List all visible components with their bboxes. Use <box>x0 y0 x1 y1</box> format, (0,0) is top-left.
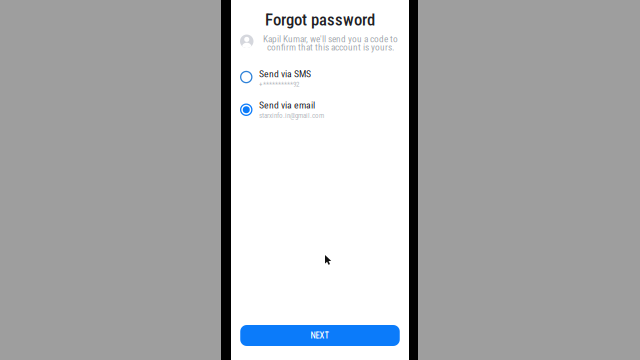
staticText: +**********92 <box>259 80 299 88</box>
button[interactable]: Send via SMS <box>231 68 409 88</box>
staticText: confirm that this account is yours. <box>267 42 394 53</box>
staticText: Kapil Kumar, we'll send you a code to <box>263 33 398 44</box>
button[interactable]: Send via email <box>231 99 409 120</box>
staticText: Send via email <box>259 99 315 111</box>
staticText: Forgot password <box>265 10 375 29</box>
button[interactable]: NEXT <box>240 325 400 346</box>
staticText: NEXT <box>310 330 329 341</box>
staticText: Send via SMS <box>259 68 311 80</box>
staticText: starxinfo.in@gmail.com <box>259 111 324 120</box>
